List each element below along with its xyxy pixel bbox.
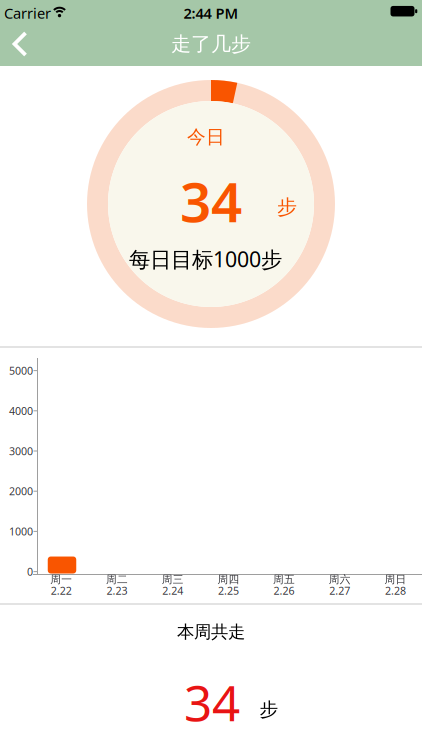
staticText: 步 [277,195,297,219]
staticText: 0 [27,564,33,579]
staticText: 今日 [187,125,225,148]
staticText: 周四 [217,573,239,586]
staticText: 周一 [50,573,72,586]
button[interactable] [0,24,44,64]
staticText: 2.25 [218,583,239,598]
staticText: 2.22 [51,583,72,598]
staticText: 3000 [9,444,33,458]
staticText: 周六 [329,573,351,586]
staticText: 走了几步 [171,32,251,56]
staticText: 2.27 [329,583,350,598]
staticText: Carrier [4,3,51,23]
staticText: 周日 [384,573,406,586]
staticText: 周三 [162,573,184,586]
staticText: 2.26 [274,583,295,598]
staticText: 5000 [9,363,33,378]
staticText: 步 [259,698,278,721]
staticText: 每日目标1000步 [129,245,282,273]
staticText: 1000 [9,524,33,538]
staticText: 2.24 [162,583,183,598]
staticText: 34 [180,165,242,237]
staticText: 2.23 [106,583,127,598]
staticText: 2:44 PM [183,3,238,23]
staticText: 周二 [106,573,128,586]
staticText: 本周共走 [177,621,245,643]
staticText: 2.28 [385,583,406,598]
staticText: 34 [184,669,240,735]
staticText: 2000 [9,484,33,498]
staticText: 周五 [273,573,295,586]
staticText: 4000 [9,404,33,418]
